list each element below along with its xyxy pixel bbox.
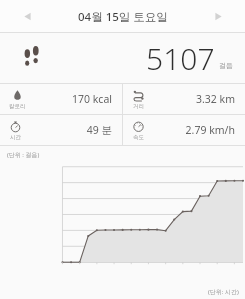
staticText: (단위: 시간) (208, 288, 239, 296)
staticText: 거리 (133, 103, 144, 110)
staticText: 칼로리 (9, 103, 26, 110)
staticText: 시간 (10, 134, 21, 141)
button[interactable]: 거리 (123, 84, 245, 114)
staticText: 04월 15일 토요일 (78, 9, 168, 25)
button[interactable]: 5107 (0, 33, 245, 83)
staticText: 속도 (133, 134, 144, 141)
staticText: 걸음 (219, 61, 233, 70)
staticText: 170 kcal (72, 92, 112, 106)
button[interactable]: 속도 (123, 115, 245, 145)
staticText: 2.79 km/h (185, 123, 235, 137)
button[interactable]: 시간 (0, 115, 122, 145)
button[interactable]: Previous day (10, 0, 44, 33)
button[interactable]: 칼로리 (0, 84, 122, 114)
staticText: 49 분 (86, 123, 112, 137)
staticText: 3.32 km (196, 92, 235, 106)
staticText: 5107 (146, 38, 215, 79)
button[interactable]: Next day (201, 0, 235, 33)
staticText: (단위 : 걸음) (7, 151, 40, 159)
